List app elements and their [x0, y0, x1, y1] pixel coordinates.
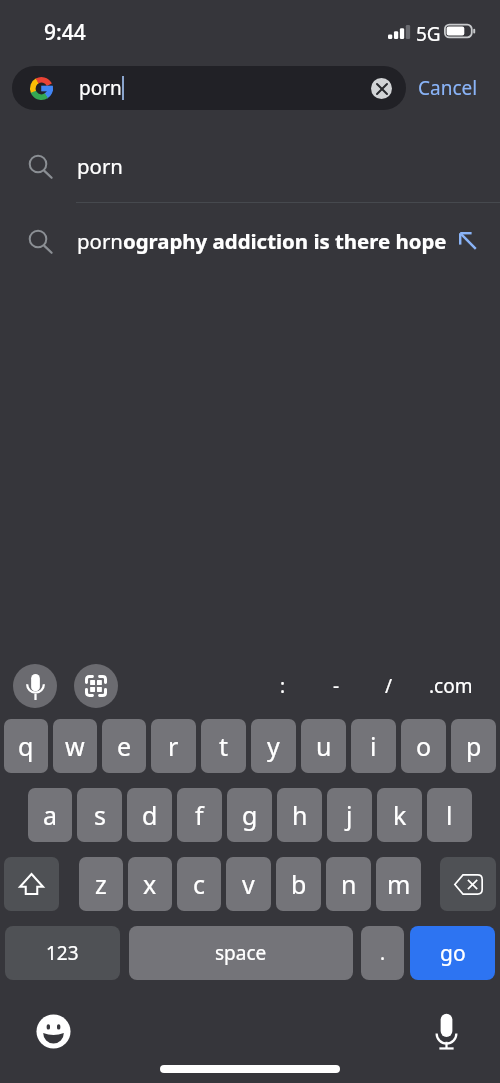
button[interactable]: Clear search — [371, 78, 392, 99]
staticText: go — [440, 939, 466, 968]
button[interactable]: Cancel — [406, 66, 490, 110]
button[interactable]: h — [277, 788, 322, 842]
button[interactable]: w — [53, 719, 97, 773]
button[interactable]: j — [327, 788, 372, 842]
staticText: h — [292, 798, 308, 832]
staticText: space — [215, 940, 267, 966]
button[interactable]: n — [326, 857, 371, 911]
button[interactable]: space — [129, 926, 353, 980]
staticText: n — [341, 867, 357, 901]
staticText: a — [43, 798, 58, 832]
button[interactable]: s — [77, 788, 122, 842]
staticText: i — [370, 729, 377, 763]
button[interactable]: / — [363, 664, 415, 708]
staticText: y — [267, 729, 280, 763]
staticText: : — [280, 673, 286, 699]
button[interactable]: q — [4, 719, 48, 773]
button[interactable]: . — [361, 926, 404, 980]
staticText: pornography addiction is there hope — [77, 227, 447, 255]
button[interactable]: y — [251, 719, 296, 773]
button[interactable]: porn — [12, 66, 406, 110]
staticText: g — [242, 798, 258, 832]
button[interactable]: Shift — [4, 857, 59, 911]
staticText: 9:44 — [44, 18, 86, 47]
staticText: porn — [77, 152, 123, 180]
staticText: v — [242, 867, 255, 901]
button[interactable]: z — [79, 857, 123, 911]
button[interactable]: d — [127, 788, 172, 842]
button[interactable]: o — [401, 719, 446, 773]
staticText: c — [193, 867, 206, 901]
button[interactable]: 123 — [5, 926, 120, 980]
staticText: t — [219, 729, 229, 763]
button[interactable]: Backspace — [440, 857, 496, 911]
button[interactable]: b — [276, 857, 321, 911]
staticText: b — [291, 867, 307, 901]
button[interactable]: e — [102, 719, 146, 773]
button[interactable]: .com — [425, 664, 477, 708]
staticText: o — [416, 729, 432, 763]
button[interactable]: Voice search — [13, 664, 57, 708]
button[interactable]: l — [427, 788, 472, 842]
button[interactable]: porn — [0, 130, 500, 202]
button[interactable]: x — [128, 857, 172, 911]
button[interactable]: v — [226, 857, 271, 911]
button[interactable]: m — [376, 857, 421, 911]
staticText: x — [143, 867, 157, 901]
staticText: 123 — [46, 940, 79, 966]
button[interactable]: f — [177, 788, 222, 842]
button[interactable]: a — [28, 788, 72, 842]
staticText: q — [18, 729, 34, 763]
staticText: r — [168, 729, 179, 763]
button[interactable]: i — [351, 719, 396, 773]
staticText: z — [95, 867, 107, 901]
staticText: f — [195, 798, 204, 832]
button[interactable]: p — [451, 719, 496, 773]
button[interactable]: Google Lens — [74, 664, 118, 708]
staticText: k — [393, 798, 407, 832]
button[interactable]: pornography addiction is there hope — [0, 203, 500, 279]
button[interactable]: go — [410, 926, 495, 980]
staticText: 5G — [416, 21, 441, 47]
staticText: l — [446, 798, 453, 832]
button[interactable]: - — [310, 664, 362, 708]
staticText: p — [466, 729, 482, 763]
staticText: - — [333, 673, 340, 699]
staticText: w — [65, 729, 85, 763]
staticText: / — [385, 673, 393, 699]
button[interactable]: : — [257, 664, 309, 708]
button[interactable]: c — [177, 857, 221, 911]
button[interactable]: g — [227, 788, 272, 842]
staticText: u — [316, 729, 332, 763]
button[interactable]: Dictate — [427, 1012, 465, 1050]
staticText: j — [346, 798, 353, 832]
staticText: d — [142, 798, 158, 832]
staticText: m — [387, 867, 411, 901]
button[interactable]: r — [151, 719, 196, 773]
staticText: . — [380, 940, 386, 966]
button[interactable]: t — [201, 719, 246, 773]
button[interactable]: k — [377, 788, 422, 842]
button[interactable]: u — [301, 719, 346, 773]
button[interactable]: Emoji — [34, 1012, 72, 1050]
staticText: e — [117, 729, 132, 763]
staticText: s — [94, 798, 106, 832]
staticText: .com — [429, 673, 473, 699]
staticText: porn — [79, 75, 122, 101]
staticText: Cancel — [418, 75, 478, 101]
